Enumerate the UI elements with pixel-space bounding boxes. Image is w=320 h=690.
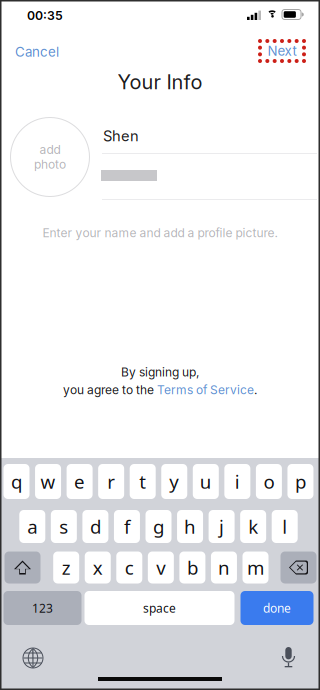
staticText: q: [11, 469, 22, 494]
button[interactable]: t: [130, 464, 156, 499]
staticText: g: [153, 514, 164, 539]
staticText: k: [248, 514, 258, 539]
button[interactable]: m: [242, 551, 268, 583]
staticText: 123: [32, 600, 53, 616]
button[interactable]: f: [114, 510, 140, 543]
staticText: i: [235, 469, 240, 494]
button[interactable]: r: [98, 464, 124, 499]
staticText: space: [143, 600, 176, 616]
button[interactable]: c: [116, 551, 142, 583]
staticText: r: [107, 469, 115, 494]
button[interactable]: e: [67, 464, 93, 499]
button[interactable]: Terms of Service: [157, 382, 254, 397]
staticText: v: [156, 555, 165, 580]
staticText: Your Info: [117, 70, 202, 94]
staticText: c: [125, 555, 134, 580]
button[interactable]: w: [35, 464, 61, 499]
button[interactable]: i: [224, 464, 250, 499]
staticText: w: [40, 469, 55, 494]
button[interactable]: o: [256, 464, 282, 499]
staticText: Shen: [103, 127, 139, 145]
button[interactable]: d: [82, 510, 108, 543]
staticText: done: [263, 600, 291, 616]
button[interactable]: Next keyboard: [23, 648, 43, 668]
staticText: z: [62, 555, 71, 580]
button[interactable]: b: [179, 551, 205, 583]
button[interactable]: Shift: [4, 551, 40, 583]
button[interactable]: p: [287, 464, 313, 499]
button[interactable]: l: [272, 510, 298, 543]
button[interactable]: h: [177, 510, 203, 543]
staticText: you agree to the: [63, 382, 157, 397]
button[interactable]: x: [85, 551, 111, 583]
staticText: By signing up,: [121, 365, 199, 379]
staticText: photo: [34, 157, 66, 171]
staticText: n: [218, 555, 230, 580]
button[interactable]: q: [3, 464, 29, 499]
button[interactable]: v: [148, 551, 174, 583]
button[interactable]: s: [51, 510, 77, 543]
staticText: l: [282, 514, 287, 539]
button[interactable]: Dictation: [280, 647, 297, 668]
staticText: o: [263, 469, 274, 494]
staticText: j: [219, 514, 224, 539]
button[interactable]: Delete: [280, 551, 316, 583]
staticText: m: [247, 555, 264, 580]
button[interactable]: u: [193, 464, 219, 499]
button[interactable]: Add photo: [10, 117, 90, 197]
button[interactable]: space: [84, 591, 234, 625]
staticText: .: [254, 382, 257, 397]
staticText: add: [39, 142, 60, 157]
button[interactable]: Next: [258, 39, 306, 63]
staticText: d: [90, 514, 101, 539]
staticText: e: [74, 469, 85, 494]
button[interactable]: y: [161, 464, 187, 499]
staticText: Next: [267, 43, 296, 59]
staticText: y: [169, 469, 179, 494]
staticText: s: [59, 514, 68, 539]
button[interactable]: a: [19, 510, 45, 543]
staticText: p: [295, 469, 306, 494]
button[interactable]: g: [145, 510, 171, 543]
staticText: Enter your name and add a profile pictur…: [42, 226, 277, 240]
button[interactable]: j: [209, 510, 235, 543]
staticText: Terms of Service: [157, 382, 254, 397]
staticText: Cancel: [15, 44, 59, 60]
staticText: h: [184, 514, 196, 539]
button[interactable]: n: [211, 551, 237, 583]
button[interactable]: 123: [3, 591, 81, 625]
button[interactable]: done: [240, 591, 313, 625]
staticText: f: [124, 514, 130, 539]
staticText: x: [93, 555, 103, 580]
button[interactable]: k: [240, 510, 266, 543]
staticText: a: [27, 514, 37, 539]
staticText: u: [200, 469, 212, 494]
staticText: t: [139, 469, 146, 494]
button[interactable]: Cancel: [15, 41, 77, 63]
staticText: b: [187, 555, 198, 580]
button[interactable]: z: [53, 551, 79, 583]
staticText: 00:35: [27, 8, 63, 23]
